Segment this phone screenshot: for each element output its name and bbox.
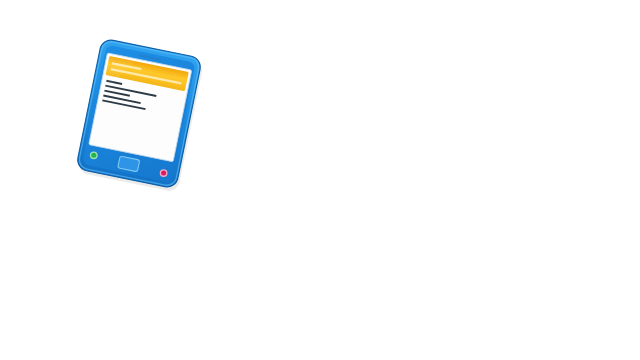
button[interactable]: Smartphone showing a notification messag… <box>0 0 640 360</box>
